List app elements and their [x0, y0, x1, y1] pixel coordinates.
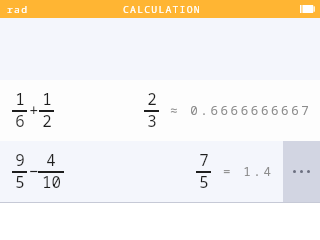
staticText: CALCULATION — [123, 3, 201, 16]
other: Battery — [300, 5, 315, 13]
button[interactable]: 1 — [0, 80, 320, 141]
staticText: 1 — [42, 88, 52, 110]
staticText: 5 — [15, 171, 25, 193]
staticText: + — [29, 99, 39, 121]
staticText: = 1.4 — [223, 163, 274, 180]
staticText: rad — [7, 3, 29, 16]
staticText: ≈ 0.6666666667 — [170, 102, 312, 119]
staticText: 4 — [46, 149, 56, 171]
staticText: 3 — [147, 110, 157, 132]
staticText: 2 — [147, 88, 157, 110]
staticText: 5 — [199, 171, 209, 193]
button[interactable]: More options — [283, 141, 320, 202]
staticText: − — [29, 160, 39, 182]
staticText: 7 — [199, 149, 209, 171]
staticText: 1 — [15, 88, 25, 110]
staticText: 6 — [15, 110, 25, 132]
staticText: 9 — [15, 149, 25, 171]
staticText: 10 — [42, 171, 61, 193]
staticText: 2 — [42, 110, 52, 132]
button[interactable] — [0, 141, 320, 202]
